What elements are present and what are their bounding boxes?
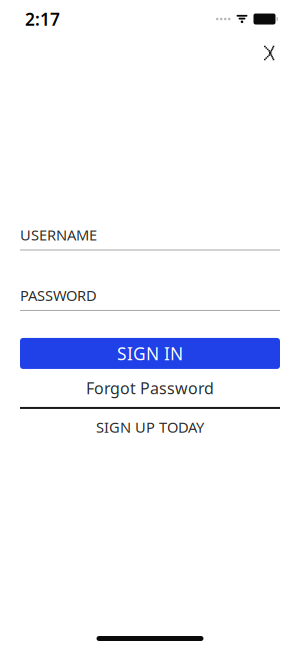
- staticText: SIGN IN: [117, 342, 183, 365]
- staticText: Forgot Password: [86, 377, 214, 398]
- button[interactable]: Forgot Password: [20, 377, 280, 399]
- staticText: PASSWORD: [20, 285, 97, 305]
- button[interactable]: Close: [254, 36, 288, 70]
- staticText: USERNAME: [20, 225, 97, 244]
- button[interactable]: SIGN IN: [20, 338, 280, 369]
- button[interactable]: SIGN UP TODAY: [20, 417, 280, 437]
- staticText: 2:17: [25, 7, 60, 30]
- staticText: SIGN UP TODAY: [96, 417, 204, 437]
